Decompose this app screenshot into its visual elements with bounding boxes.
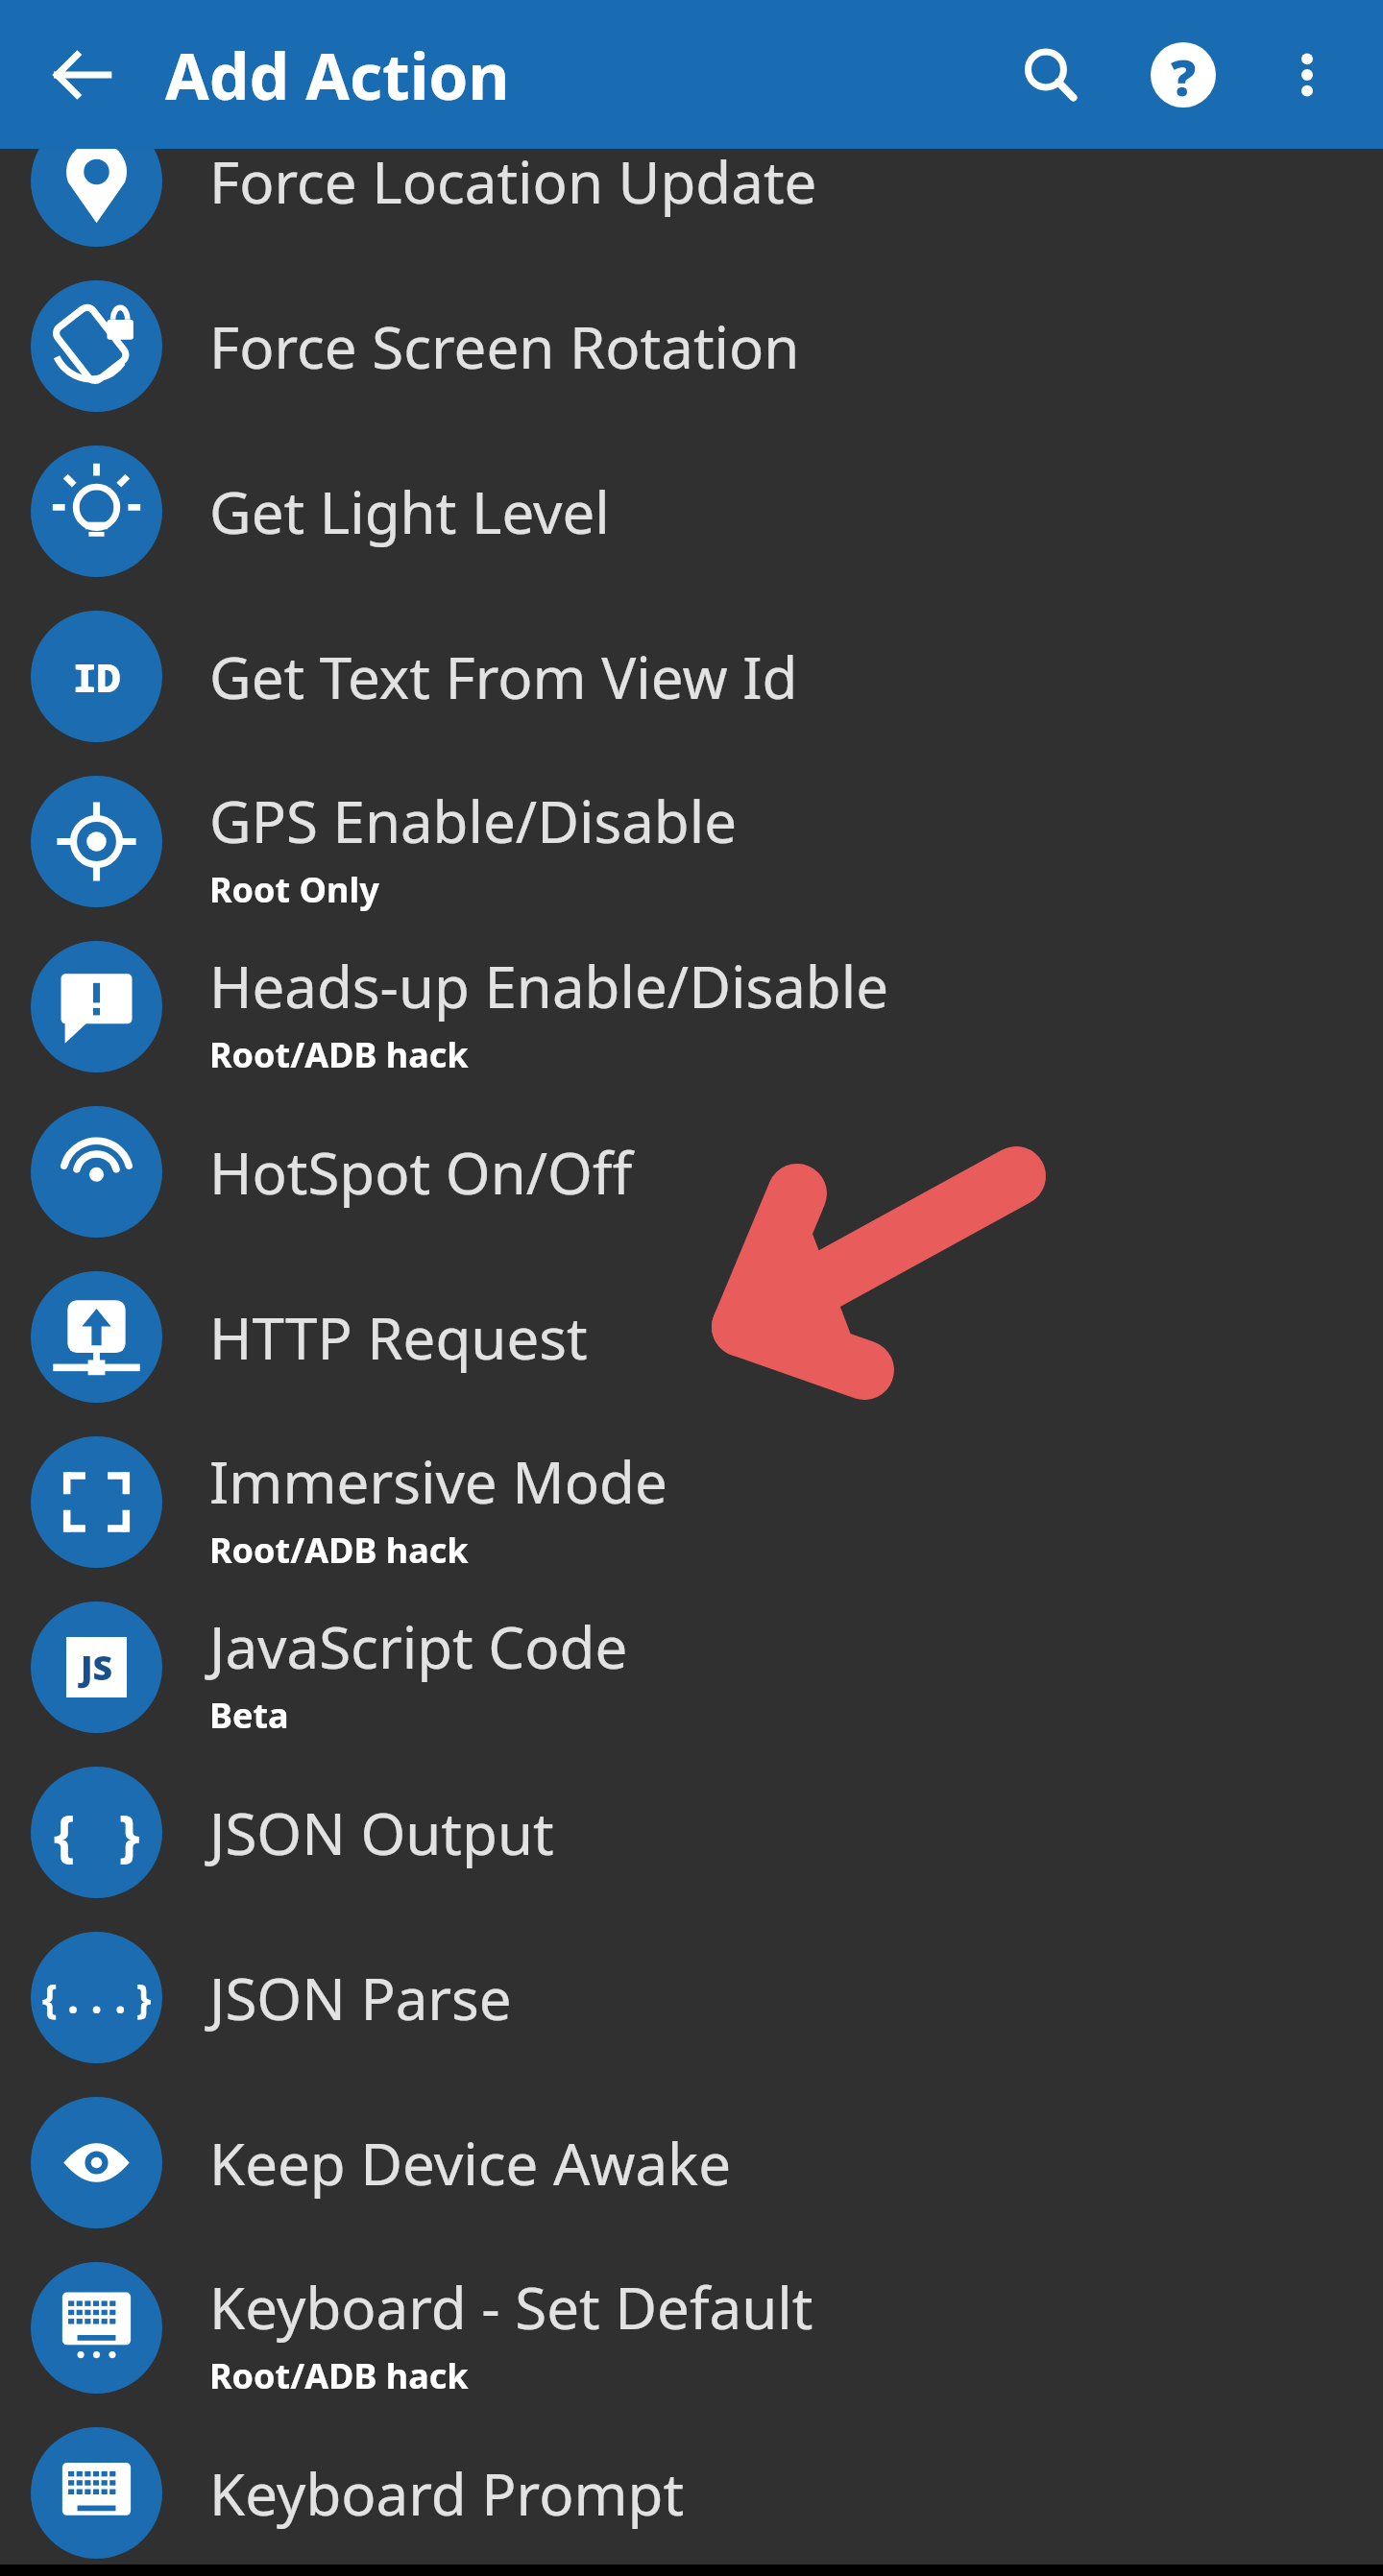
staticText: {...} [37,1971,157,2025]
staticText: Beta [209,1692,289,1739]
staticText: ? [1171,42,1197,108]
button[interactable] [0,593,1383,758]
button[interactable] [0,758,1383,924]
staticText: HTTP Request [209,1298,588,1377]
staticText: JSON Parse [209,1959,512,2037]
button[interactable] [0,1419,1383,1584]
button[interactable]: Back [29,22,134,128]
staticText: ID [73,650,121,704]
staticText: Add Action [165,32,510,118]
staticText: Root/ADB hack [209,1031,469,1078]
staticText: Root/ADB hack [209,2352,469,2399]
button[interactable] [0,1749,1383,1914]
button[interactable] [0,1914,1383,2080]
staticText: JSON Output [209,1794,554,1872]
staticText: Get Text From View Id [209,638,798,716]
button[interactable] [0,1089,1383,1254]
staticText: Immersive Mode [209,1442,667,1521]
button[interactable]: Help [1126,17,1241,132]
button[interactable] [0,263,1383,428]
staticText: Heads-up Enable/Disable [209,947,889,1025]
staticText: JavaScript Code [209,1607,628,1686]
staticText: HotSpot On/Off [209,1133,633,1212]
staticText: JS [81,1644,113,1691]
button[interactable] [0,924,1383,1089]
button[interactable]: Search [993,17,1108,132]
button[interactable] [0,2410,1383,2575]
staticText: Root/ADB hack [209,1527,469,1574]
button[interactable] [0,1584,1383,1749]
staticText: Keyboard - Set Default [209,2268,813,2347]
staticText: { } [47,1795,147,1870]
button[interactable] [0,1254,1383,1419]
staticText: GPS Enable/Disable [209,782,738,860]
staticText: Get Light Level [209,472,610,551]
button[interactable] [0,2080,1383,2245]
staticText: Force Screen Rotation [209,307,800,386]
staticText: Keyboard Prompt [209,2454,685,2533]
button[interactable]: More options [1254,22,1360,128]
staticText: Root Only [209,866,379,913]
button[interactable] [0,428,1383,593]
staticText: Force Location Update [209,142,817,221]
button[interactable] [0,2245,1383,2410]
staticText: Keep Device Awake [209,2124,731,2203]
button[interactable] [0,98,1383,263]
